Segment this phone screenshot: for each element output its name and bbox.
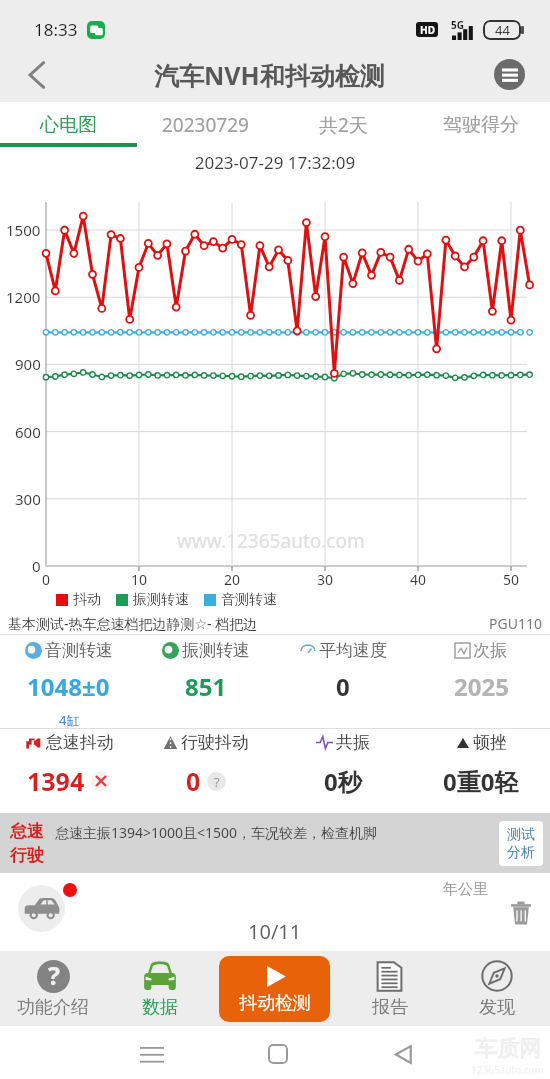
- button[interactable]: 报告: [336, 951, 443, 1026]
- staticText: 振测转速: [182, 640, 250, 661]
- staticText: 车质网: [475, 1035, 541, 1063]
- staticText: 18:33: [34, 18, 78, 41]
- staticText: 分析: [507, 844, 535, 862]
- staticText: 300: [15, 489, 41, 509]
- staticText: 40: [410, 570, 427, 589]
- staticText: 发现: [479, 996, 515, 1019]
- button[interactable]: Delete: [503, 895, 539, 931]
- staticText: 1048±0: [27, 670, 110, 703]
- staticText: 600: [15, 422, 41, 442]
- staticText: 0重0轻: [443, 765, 519, 798]
- button[interactable]: 共2天: [274, 102, 412, 147]
- staticText: www.12365auto.com: [177, 528, 365, 554]
- staticText: 测试: [507, 826, 535, 844]
- button[interactable]: 抖动检测: [219, 956, 330, 1022]
- button[interactable]: Recent apps: [132, 1034, 172, 1074]
- staticText: 行驶抖动: [181, 732, 249, 753]
- staticText: 基本测试-热车怠速档把边静测☆- 档把边: [8, 614, 258, 633]
- staticText: 共振: [336, 732, 370, 753]
- staticText: 怠速: [10, 821, 44, 842]
- staticText: 1394: [27, 764, 85, 798]
- staticText: 怠速抖动: [46, 732, 114, 753]
- staticText: 心电图: [40, 113, 97, 137]
- staticText: 汽车NVH和抖动检测: [154, 58, 385, 92]
- button[interactable]: Back: [383, 1034, 423, 1074]
- staticText: 0: [42, 570, 51, 589]
- staticText: 44: [495, 21, 510, 39]
- staticText: 0: [32, 556, 41, 576]
- staticText: 音测转速: [45, 640, 113, 661]
- staticText: 共2天: [319, 112, 368, 138]
- button[interactable]: 驾驶得分: [412, 102, 550, 147]
- staticText: 4缸: [59, 711, 80, 729]
- staticText: 2025: [454, 670, 509, 703]
- staticText: 音测转速: [221, 591, 277, 609]
- staticText: 0: [186, 764, 201, 798]
- button[interactable]: Menu: [468, 47, 550, 102]
- staticText: 次振: [473, 640, 507, 661]
- button[interactable]: 发现: [443, 951, 550, 1026]
- staticText: 851: [185, 670, 227, 703]
- staticText: 0: [336, 670, 350, 703]
- staticText: 抖动: [73, 591, 101, 609]
- staticText: 900: [15, 354, 41, 374]
- staticText: ?: [214, 773, 220, 791]
- staticText: 平均速度: [319, 640, 387, 661]
- staticText: 5G: [451, 18, 464, 32]
- staticText: 振测转速: [133, 591, 189, 609]
- staticText: 报告: [372, 996, 408, 1019]
- staticText: 20230729: [162, 112, 249, 138]
- staticText: 功能介绍: [17, 996, 89, 1019]
- staticText: PGU110: [489, 614, 542, 633]
- staticText: 2023-07-29 17:32:09: [0, 151, 550, 174]
- button[interactable]: Back: [0, 47, 72, 102]
- staticText: 1500: [6, 220, 41, 240]
- button[interactable]: 数据: [106, 951, 213, 1026]
- staticText: 抖动检测: [239, 992, 311, 1015]
- staticText: 12365auto.com: [471, 1063, 544, 1077]
- button[interactable]: 心电图: [0, 102, 137, 147]
- staticText: 年公里: [443, 880, 488, 899]
- staticText: ?: [48, 960, 60, 991]
- button[interactable]: ?: [0, 951, 106, 1026]
- staticText: 10/11: [248, 918, 302, 945]
- staticText: 数据: [142, 996, 178, 1019]
- staticText: 怠速主振1394>1000且<1500，车况较差，检查机脚: [55, 823, 378, 842]
- button[interactable]: Home: [258, 1034, 298, 1074]
- staticText: 20: [224, 570, 241, 589]
- staticText: 10: [131, 570, 148, 589]
- staticText: HD: [420, 23, 435, 37]
- button[interactable]: 测试: [499, 821, 543, 866]
- button[interactable]: Vehicle: [18, 885, 65, 932]
- staticText: 50: [503, 570, 520, 589]
- staticText: 行驶: [10, 845, 44, 866]
- staticText: 驾驶得分: [443, 113, 519, 137]
- staticText: 30: [317, 570, 334, 589]
- staticText: 顿挫: [473, 732, 507, 753]
- staticText: 1200: [6, 287, 41, 307]
- button[interactable]: 20230729: [137, 102, 274, 147]
- staticText: 0秒: [324, 765, 362, 798]
